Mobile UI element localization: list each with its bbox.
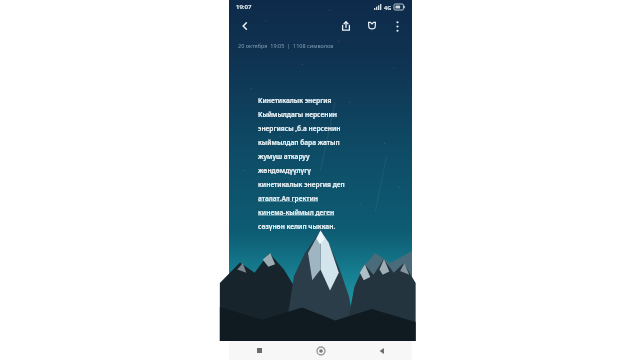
staticText: сөзүнөн келип чыккан. [258,222,336,231]
staticText: кинетикалык энергия деп [258,180,345,189]
staticText: жумуш аткаруу [258,152,310,161]
staticText: Кинетикалык энергия [258,96,332,105]
staticText: 19:07 [236,3,252,11]
button[interactable]: Home [290,341,351,360]
staticText: 20 октября 19:05 | 1108 символов [238,42,334,49]
button[interactable]: Recents [229,341,290,360]
button[interactable]: Back [234,15,256,37]
button[interactable]: Save [361,15,383,37]
staticText: жөндөмдүүлүгү [258,166,311,175]
staticText: 4G [384,4,392,11]
button[interactable]: More options [387,16,407,36]
staticText: энергиясы ,б.а нерсенин [258,124,341,133]
button[interactable]: Back [351,341,412,360]
staticText: аталат.Ал гректин [258,194,319,203]
staticText: Кыймылдагы нерсенин [258,110,337,119]
staticText: кыймылдап бара жатып [258,138,340,147]
button[interactable]: Share [335,15,357,37]
staticText: кинема-кыймыл деген [258,208,335,217]
